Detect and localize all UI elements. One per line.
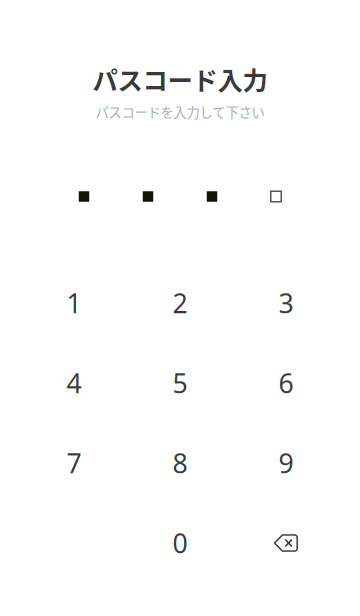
button[interactable]: 1 — [21, 263, 127, 343]
button[interactable]: 8 — [127, 423, 233, 503]
button[interactable]: 2 — [127, 263, 233, 343]
button[interactable]: 9 — [233, 423, 339, 503]
staticText: 5 — [172, 365, 187, 401]
button[interactable]: Delete — [233, 503, 339, 583]
button[interactable]: 3 — [233, 263, 339, 343]
button[interactable]: 7 — [21, 423, 127, 503]
staticText: 4 — [66, 365, 81, 401]
staticText: 3 — [278, 285, 293, 321]
staticText: 8 — [172, 445, 187, 481]
staticText: 2 — [172, 285, 187, 321]
button[interactable]: 0 — [127, 503, 233, 583]
staticText: パスコード入力 — [92, 61, 267, 97]
staticText: 6 — [278, 365, 293, 401]
button[interactable]: 6 — [233, 343, 339, 423]
staticText: 0 — [172, 525, 187, 561]
button[interactable]: 5 — [127, 343, 233, 423]
staticText: 1 — [66, 285, 81, 321]
staticText: 7 — [66, 445, 81, 481]
staticText: 9 — [278, 445, 293, 481]
button[interactable]: 4 — [21, 343, 127, 423]
staticText: パスコードを入力して下さい — [95, 102, 264, 121]
